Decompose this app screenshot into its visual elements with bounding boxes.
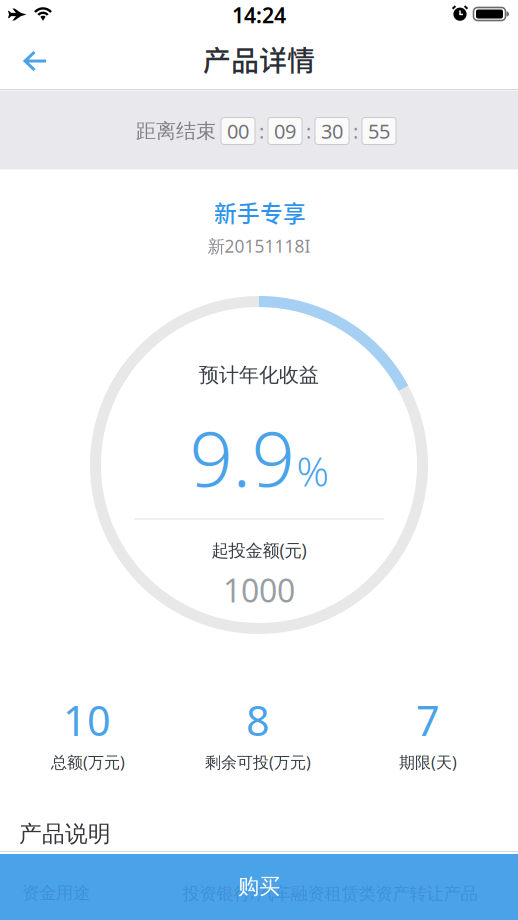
staticText: 09 xyxy=(274,118,296,144)
staticText: 7 xyxy=(416,693,440,747)
staticText: 产品详情 xyxy=(203,39,315,79)
staticText: 10 xyxy=(63,693,111,747)
staticText: 8 xyxy=(246,693,270,747)
staticText: 总额(万元) xyxy=(51,751,125,773)
staticText: : xyxy=(306,118,311,144)
staticText: % xyxy=(296,444,328,497)
staticText: 购买 xyxy=(238,873,280,900)
staticText: 产品说明 xyxy=(19,820,111,848)
staticText: 起投金额(元) xyxy=(211,538,306,561)
staticText: 1000 xyxy=(223,569,295,611)
staticText: 资金用途 xyxy=(22,882,90,904)
button[interactable]: 资金用途 xyxy=(0,854,518,920)
staticText: 剩余可投(万元) xyxy=(205,751,311,773)
staticText: : xyxy=(353,118,358,144)
staticText: 55 xyxy=(368,118,390,144)
staticText: 14:24 xyxy=(232,1,286,29)
staticText: 投资银行/汽车融资租赁类资产转让产品 xyxy=(182,881,477,904)
staticText: 期限(天) xyxy=(399,751,457,773)
button[interactable]: Back xyxy=(13,41,56,81)
staticText: 距离结束 xyxy=(136,119,216,143)
staticText: : xyxy=(259,118,264,144)
staticText: 预计年化收益 xyxy=(199,363,319,387)
staticText: 00 xyxy=(227,118,249,144)
staticText: 新手专享 xyxy=(214,196,306,228)
staticText: 30 xyxy=(321,118,343,144)
staticText: 9.9 xyxy=(189,406,294,507)
staticText: 新20151118I xyxy=(207,234,310,257)
